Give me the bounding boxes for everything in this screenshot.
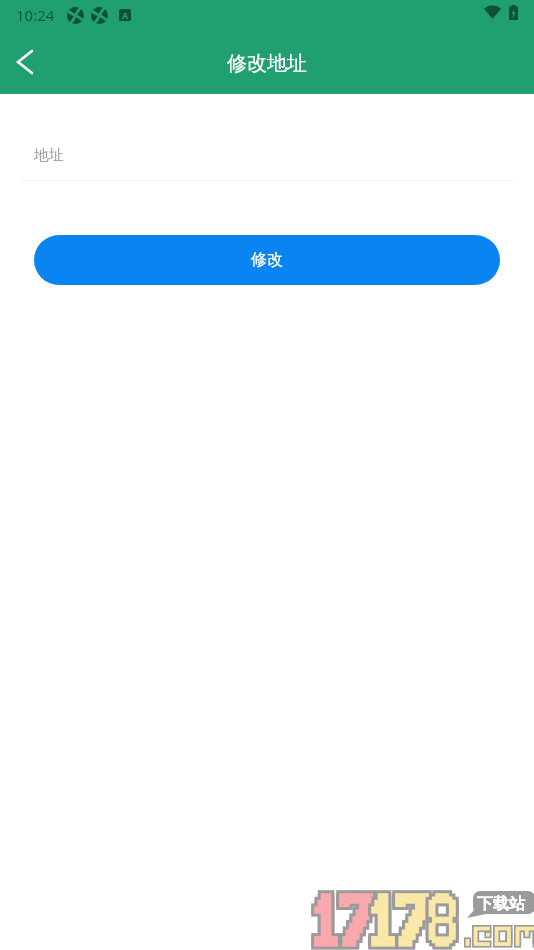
button[interactable]: 修改 [34, 235, 500, 285]
staticText: 10:24 [16, 5, 55, 25]
staticText: 地址 [34, 146, 64, 165]
staticText: 下载站 [477, 894, 525, 914]
staticText: A [122, 9, 129, 21]
staticText: 修改地址 [227, 51, 307, 76]
staticText: 修改 [251, 250, 283, 270]
button[interactable]: Back [0, 37, 50, 87]
